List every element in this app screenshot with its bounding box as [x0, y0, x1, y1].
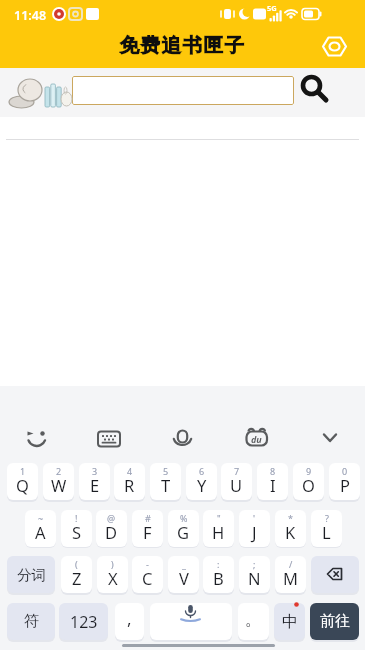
staticText: D	[105, 521, 118, 543]
button[interactable]: '	[239, 510, 270, 547]
staticText: L	[322, 521, 331, 543]
button[interactable]: "	[203, 510, 234, 547]
staticText: *	[288, 512, 293, 524]
staticText: H	[212, 521, 225, 543]
staticText: /	[289, 558, 293, 570]
staticText: 前往	[320, 612, 350, 631]
staticText: E	[90, 474, 100, 496]
staticText: K	[285, 521, 296, 543]
staticText: @	[107, 512, 116, 524]
staticText: A	[35, 521, 46, 543]
button[interactable]	[311, 556, 359, 593]
staticText: O	[302, 474, 315, 496]
button[interactable]: @	[96, 510, 127, 547]
staticText: Q	[16, 474, 29, 496]
button[interactable]: 中	[274, 603, 305, 640]
staticText: )	[111, 558, 114, 570]
staticText: T	[161, 474, 171, 496]
button[interactable]: 123	[59, 603, 108, 640]
staticText: !	[75, 512, 78, 524]
staticText: U	[230, 474, 243, 496]
button[interactable]: 符	[7, 603, 55, 640]
button[interactable]: *	[275, 510, 306, 547]
button[interactable]	[72, 76, 294, 105]
staticText: ;	[253, 558, 256, 570]
staticText: S	[72, 521, 82, 543]
button[interactable]: 2	[43, 463, 74, 500]
staticText: 5	[163, 465, 169, 477]
staticText: M	[283, 567, 298, 589]
button[interactable]: 9	[293, 463, 324, 500]
staticText: ,	[127, 607, 132, 630]
staticText: 5G	[267, 3, 277, 13]
button[interactable]: 前往	[310, 603, 359, 640]
staticText: #	[145, 512, 151, 524]
staticText: 0	[342, 465, 348, 477]
button[interactable]: 6	[186, 463, 217, 500]
staticText: B	[213, 567, 224, 589]
staticText: 6	[199, 465, 205, 477]
button[interactable]: _	[168, 556, 199, 593]
button[interactable]: /	[275, 556, 306, 593]
staticText: N	[248, 567, 261, 589]
staticText: 免费追书匣子	[0, 33, 365, 58]
button[interactable]: 分词	[7, 556, 55, 593]
button[interactable]: %	[168, 510, 199, 547]
button[interactable]: ?	[311, 510, 342, 547]
staticText: 123	[70, 611, 98, 633]
staticText: 4	[127, 465, 133, 477]
staticText: :	[217, 558, 220, 570]
staticText: 9	[306, 465, 312, 477]
button[interactable]: )	[97, 556, 128, 593]
staticText: 8	[270, 465, 276, 477]
staticText: -	[146, 558, 149, 570]
button[interactable]: :	[203, 556, 234, 593]
button[interactable]: #	[132, 510, 163, 547]
staticText: Z	[72, 567, 82, 589]
staticText: HD	[255, 10, 266, 20]
staticText: I	[270, 474, 276, 496]
staticText: R	[124, 474, 135, 496]
button[interactable]: 8	[257, 463, 288, 500]
staticText: V	[179, 567, 189, 589]
staticText: W	[51, 474, 67, 496]
button[interactable]: ~	[25, 510, 56, 547]
button[interactable]: 4	[114, 463, 145, 500]
staticText: 3	[92, 465, 98, 477]
button[interactable]: 7	[221, 463, 252, 500]
staticText: 2	[56, 465, 62, 477]
staticText: 符	[24, 612, 39, 631]
staticText: du	[251, 433, 262, 445]
button[interactable]	[150, 603, 232, 640]
staticText: G	[177, 521, 190, 543]
button[interactable]: -	[132, 556, 163, 593]
button[interactable]: !	[61, 510, 92, 547]
staticText: 中	[282, 612, 298, 632]
button[interactable]: 3	[79, 463, 110, 500]
staticText: 。	[245, 609, 262, 630]
staticText: 分词	[17, 566, 46, 584]
staticText: X	[108, 567, 118, 589]
staticText: (	[75, 558, 78, 570]
button[interactable]: (	[61, 556, 92, 593]
staticText: J	[252, 521, 257, 543]
button[interactable]: 。	[238, 603, 269, 640]
staticText: 7	[234, 465, 240, 477]
staticText: C	[142, 567, 153, 589]
staticText: 1	[20, 465, 26, 477]
staticText: _	[182, 558, 186, 570]
staticText: %	[180, 512, 188, 524]
button[interactable]: 0	[329, 463, 360, 500]
staticText: F	[143, 521, 152, 543]
staticText: Y	[197, 474, 207, 496]
button[interactable]: ,	[115, 603, 144, 640]
staticText: 11:48	[14, 7, 47, 24]
staticText: "	[217, 512, 221, 524]
staticText: ?	[325, 512, 329, 524]
staticText: ~	[38, 512, 44, 524]
button[interactable]: ;	[239, 556, 270, 593]
staticText: P	[340, 474, 350, 496]
staticText: '	[253, 512, 256, 524]
button[interactable]: 1	[7, 463, 38, 500]
button[interactable]: 5	[150, 463, 181, 500]
